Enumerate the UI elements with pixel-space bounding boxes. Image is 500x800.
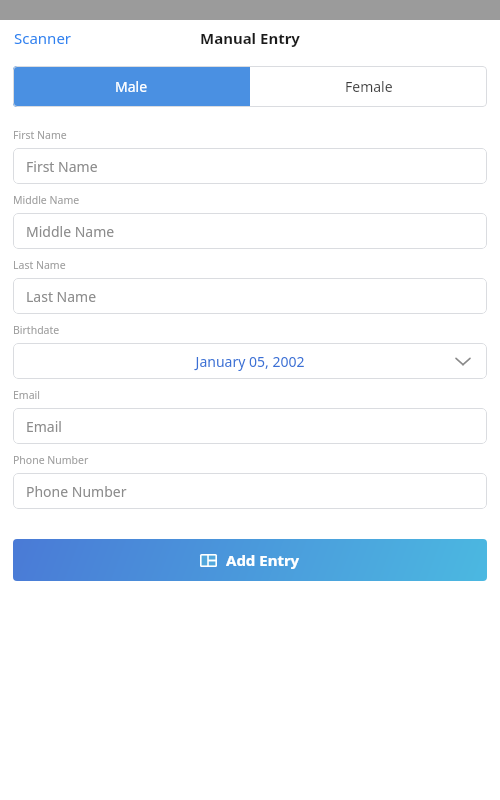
staticText: Female (345, 77, 393, 96)
staticText: Middle Name (26, 222, 115, 241)
other: ID card (200, 554, 217, 567)
button[interactable]: Email (13, 408, 487, 444)
button[interactable]: Scanner (0, 24, 80, 52)
other: Open date picker (456, 357, 470, 366)
staticText: Middle Name (13, 193, 80, 207)
button[interactable]: Phone Number (13, 473, 487, 509)
button[interactable]: First Name (13, 148, 487, 184)
staticText: First Name (13, 128, 67, 142)
staticText: Birthdate (13, 323, 60, 337)
staticText: Male (115, 77, 148, 96)
button[interactable]: Last Name (13, 278, 487, 314)
staticText: Last Name (26, 287, 97, 306)
staticText: Phone Number (26, 482, 127, 501)
button[interactable]: Female (250, 66, 487, 107)
button[interactable]: ID card (13, 539, 487, 581)
button[interactable]: January 05, 2002 (13, 343, 487, 379)
staticText: Last Name (13, 258, 66, 272)
button[interactable]: Male (13, 66, 250, 107)
staticText: Scanner (14, 28, 72, 48)
staticText: Add Entry (226, 550, 300, 570)
staticText: Email (13, 388, 40, 402)
button[interactable]: Middle Name (13, 213, 487, 249)
staticText: First Name (26, 157, 98, 176)
staticText: Email (26, 417, 62, 436)
staticText: January 05, 2002 (13, 352, 487, 371)
staticText: Phone Number (13, 453, 89, 467)
staticText: Manual Entry (200, 28, 300, 48)
